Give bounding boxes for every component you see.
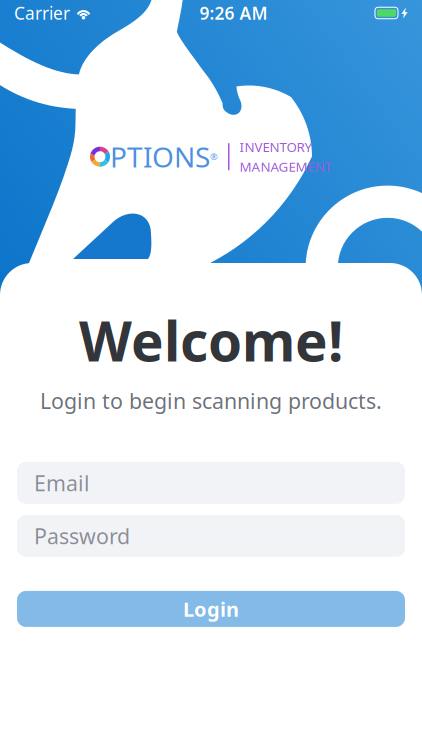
staticText: ® bbox=[210, 150, 218, 163]
staticText: Email bbox=[34, 469, 90, 497]
staticText: Login to begin scanning products. bbox=[40, 387, 382, 415]
staticText: Welcome! bbox=[79, 304, 343, 377]
button[interactable]: Login bbox=[0, 591, 422, 627]
staticText: MANAGEMENT bbox=[239, 158, 331, 175]
staticText: 9:26 AM bbox=[199, 1, 267, 24]
staticText: Login bbox=[183, 596, 239, 622]
staticText: PTIONS bbox=[110, 138, 210, 175]
staticText: Password bbox=[34, 522, 130, 550]
staticText: INVENTORY bbox=[239, 138, 312, 156]
staticText: Carrier bbox=[14, 1, 70, 24]
